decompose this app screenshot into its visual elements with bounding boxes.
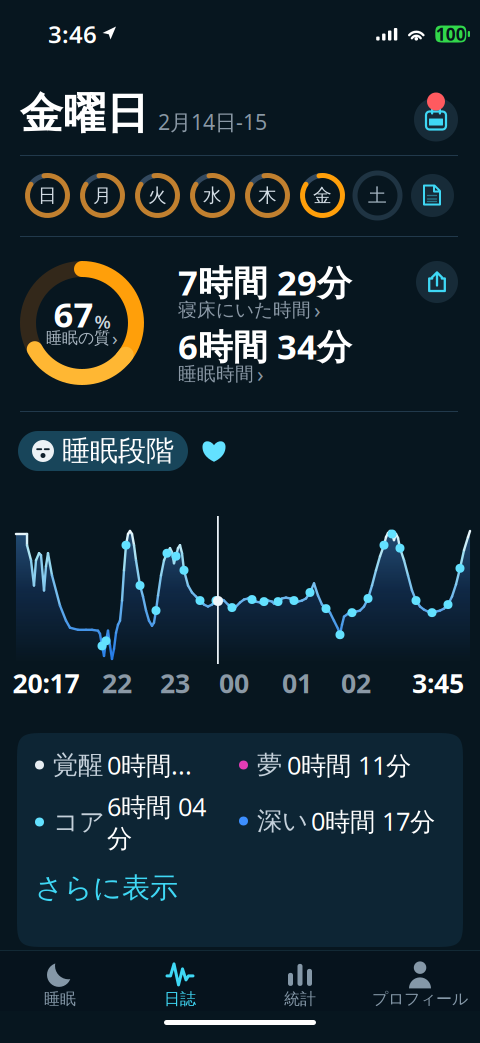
staticText: 7時間 29分 (178, 259, 352, 305)
staticText: 睡眠 (44, 989, 76, 1009)
staticText: 水 (203, 184, 222, 207)
button[interactable]: 月 (80, 173, 125, 218)
staticText: プロフィール (372, 989, 468, 1009)
staticText: 火 (148, 184, 167, 207)
staticText: 3:46 (48, 18, 97, 50)
staticText: 睡眠の質 (46, 328, 110, 348)
staticText: コア (53, 806, 105, 837)
staticText: 23 (160, 665, 190, 701)
button[interactable]: さらに表示 (35, 873, 215, 903)
button[interactable]: 統計 (240, 951, 360, 1011)
staticText: 夢 (257, 749, 282, 780)
staticText: 01 (282, 665, 312, 701)
staticText: 100 (436, 22, 466, 45)
staticText: › (257, 360, 264, 388)
staticText: さらに表示 (35, 871, 178, 905)
staticText: 20:17 (12, 665, 79, 701)
staticText: 統計 (284, 989, 316, 1009)
staticText: 金 (313, 184, 332, 207)
button[interactable]: 睡眠段階 (18, 431, 188, 471)
button[interactable]: 火 (135, 173, 180, 218)
staticText: 寝床にいた時間 (178, 298, 311, 321)
staticText: 日誌 (164, 989, 196, 1009)
staticText: 00 (219, 665, 249, 701)
staticText: 0時間 11分 (287, 748, 411, 782)
staticText: 2月14日-15 (158, 108, 267, 136)
button[interactable]: Notes (405, 173, 460, 218)
button[interactable]: 土 (355, 173, 400, 218)
staticText: 睡眠時間 (178, 362, 254, 385)
staticText: 月 (93, 184, 112, 207)
staticText: % (94, 309, 110, 334)
staticText: 0時間 17分 (311, 804, 435, 838)
button[interactable]: Heart rate (196, 433, 232, 469)
button[interactable]: 水 (190, 173, 235, 218)
button[interactable]: Calendar (414, 95, 458, 144)
staticText: 深い (257, 805, 308, 836)
staticText: 覚醒 (53, 749, 103, 780)
staticText: 金曜日 (20, 88, 149, 140)
staticText: 0時間... (107, 748, 192, 782)
staticText: 22 (102, 665, 132, 701)
button[interactable]: 金 (300, 173, 345, 218)
staticText: 睡眠段階 (62, 434, 174, 468)
staticText: › (112, 326, 118, 350)
staticText: 土 (368, 184, 387, 207)
staticText: 日 (38, 184, 57, 207)
staticText: 6時間 04分 (107, 790, 206, 854)
staticText: 3:45 (412, 665, 464, 701)
button[interactable]: 木 (245, 173, 290, 218)
button[interactable]: 睡眠 (0, 951, 120, 1011)
staticText: 木 (258, 184, 277, 207)
button[interactable]: 日 (25, 173, 70, 218)
staticText: 02 (341, 665, 371, 701)
button[interactable]: プロフィール (360, 951, 480, 1011)
staticText: 67 (53, 291, 93, 337)
staticText: › (314, 296, 321, 324)
button[interactable]: Share (416, 261, 458, 303)
button[interactable]: 日誌 (120, 951, 240, 1011)
staticText: 6時間 34分 (178, 323, 352, 369)
